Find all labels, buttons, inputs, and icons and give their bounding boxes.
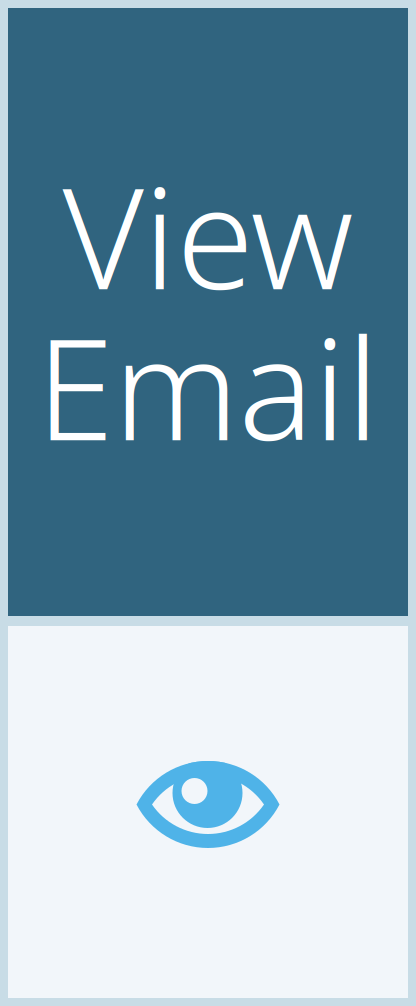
staticText: Email [36, 293, 379, 479]
staticText: View [62, 142, 353, 328]
button[interactable]: View [8, 8, 408, 616]
button[interactable]: View email [8, 626, 408, 998]
